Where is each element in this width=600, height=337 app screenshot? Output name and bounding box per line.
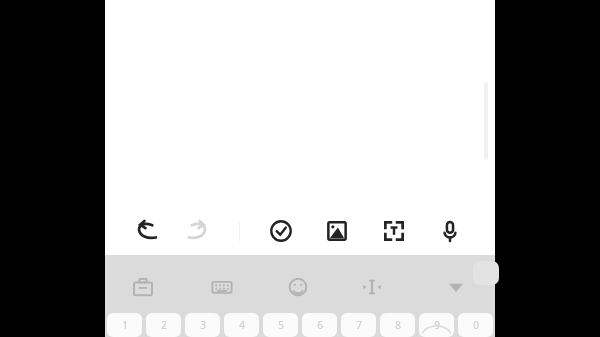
button[interactable]: 3: [185, 313, 220, 337]
button[interactable]: 6: [302, 313, 337, 337]
button[interactable]: Clipboard: [127, 271, 159, 303]
button[interactable]: Redo: [178, 213, 214, 249]
button[interactable]: Keyboard settings: [206, 271, 238, 303]
button[interactable]: Undo: [130, 213, 166, 249]
button[interactable]: Voice input: [432, 213, 468, 249]
button[interactable]: 1: [107, 313, 142, 337]
button[interactable]: 7: [341, 313, 376, 337]
staticText: 3: [200, 318, 206, 332]
staticText: 5: [278, 318, 284, 332]
button[interactable]: Done: [263, 213, 299, 249]
button[interactable]: 5: [263, 313, 298, 337]
button[interactable]: 8: [380, 313, 415, 337]
button[interactable]: Scan text: [376, 213, 412, 249]
button[interactable]: 9: [419, 313, 454, 337]
button[interactable]: Hide keyboard: [440, 271, 472, 303]
button[interactable]: 4: [224, 313, 259, 337]
button[interactable]: Move cursor: [356, 271, 388, 303]
staticText: 2: [161, 318, 167, 332]
staticText: 8: [395, 318, 401, 332]
staticText: 7: [356, 318, 362, 332]
button[interactable]: 0: [458, 313, 493, 337]
button[interactable]: Emoji: [282, 271, 314, 303]
staticText: 4: [239, 318, 245, 332]
staticText: 0: [473, 318, 479, 332]
staticText: 1: [122, 318, 128, 332]
button[interactable]: Insert image: [319, 213, 355, 249]
button[interactable]: 2: [146, 313, 181, 337]
staticText: 6: [317, 318, 323, 332]
staticText: 9: [434, 318, 440, 332]
